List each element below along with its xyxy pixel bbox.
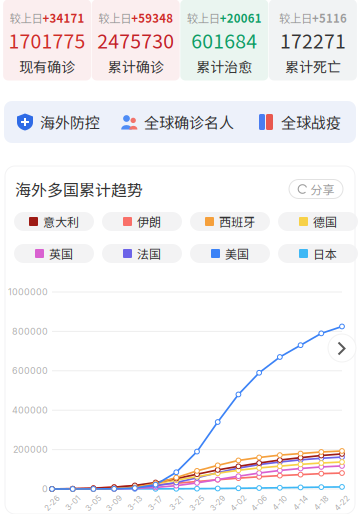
staticText: 较上日 xyxy=(10,9,43,26)
staticText: 1701775 xyxy=(9,26,86,54)
staticText: 172271 xyxy=(280,26,346,54)
staticText: 西班牙 xyxy=(219,213,255,230)
staticText: 4-06 xyxy=(250,498,269,508)
staticText: +59348 xyxy=(131,9,173,26)
staticText: 4-10 xyxy=(271,498,288,508)
staticText: 法国 xyxy=(137,245,161,262)
staticText: 较上日 xyxy=(279,9,312,26)
staticText: 3-25 xyxy=(188,498,206,508)
staticText: 分享 xyxy=(310,180,334,198)
staticText: 累计死亡 xyxy=(285,56,341,76)
button[interactable]: 分享 xyxy=(289,179,343,198)
button[interactable]: 全球确诊名人 xyxy=(110,101,244,143)
button[interactable]: 德国 xyxy=(278,212,358,231)
button[interactable]: 日本 xyxy=(278,244,358,263)
staticText: 3-29 xyxy=(209,498,227,508)
staticText: 现有确诊 xyxy=(19,56,75,76)
button[interactable]: 伊朗 xyxy=(102,212,182,231)
button[interactable]: Next chart xyxy=(328,334,356,362)
staticText: 全球战疫 xyxy=(281,111,341,133)
button[interactable]: 较上日 xyxy=(269,0,357,80)
staticText: 海外防控 xyxy=(40,111,100,133)
staticText: 2-26 xyxy=(43,498,61,508)
button[interactable]: 英国 xyxy=(14,244,94,263)
button[interactable]: 海外防控 xyxy=(6,101,110,143)
staticText: 1000000 xyxy=(8,287,48,297)
staticText: 3-01 xyxy=(64,498,81,508)
staticText: 3-05 xyxy=(84,498,103,508)
staticText: 0 xyxy=(42,484,48,494)
staticText: +20061 xyxy=(220,9,262,26)
staticText: 400000 xyxy=(12,405,48,416)
staticText: 4-18 xyxy=(313,498,330,508)
button[interactable]: 较上日 xyxy=(3,0,91,80)
staticText: 美国 xyxy=(225,245,249,262)
staticText: 累计确诊 xyxy=(108,56,164,76)
staticText: 海外多国累计趋势 xyxy=(15,177,143,201)
staticText: 3-17 xyxy=(147,498,164,508)
staticText: 200000 xyxy=(13,444,48,455)
button[interactable]: 较上日 xyxy=(92,0,180,80)
button[interactable]: 法国 xyxy=(102,244,182,263)
staticText: 日本 xyxy=(313,245,337,262)
staticText: +5116 xyxy=(312,9,347,26)
button[interactable]: 全球战疫 xyxy=(244,101,354,143)
staticText: 2475730 xyxy=(97,26,174,54)
staticText: 3-13 xyxy=(126,498,143,508)
staticText: 4-14 xyxy=(292,498,309,508)
staticText: 600000 xyxy=(12,365,48,376)
staticText: 较上日 xyxy=(187,9,220,26)
staticText: 伊朗 xyxy=(137,213,161,230)
staticText: 3-21 xyxy=(168,498,184,508)
button[interactable]: 西班牙 xyxy=(190,212,270,231)
staticText: 英国 xyxy=(49,245,73,262)
staticText: 累计治愈 xyxy=(196,56,252,76)
staticText: 4-02 xyxy=(229,498,248,508)
button[interactable]: 美国 xyxy=(190,244,270,263)
staticText: 较上日 xyxy=(98,9,131,26)
staticText: 德国 xyxy=(313,213,337,230)
staticText: 意大利 xyxy=(43,213,79,230)
staticText: 800000 xyxy=(12,326,48,337)
staticText: 3-09 xyxy=(105,498,124,508)
staticText: 4-22 xyxy=(333,498,351,508)
staticText: +34171 xyxy=(43,9,85,26)
staticText: 601684 xyxy=(191,26,257,54)
button[interactable]: 较上日 xyxy=(180,0,268,80)
button[interactable]: 意大利 xyxy=(14,212,94,231)
staticText: 全球确诊名人 xyxy=(144,111,234,133)
